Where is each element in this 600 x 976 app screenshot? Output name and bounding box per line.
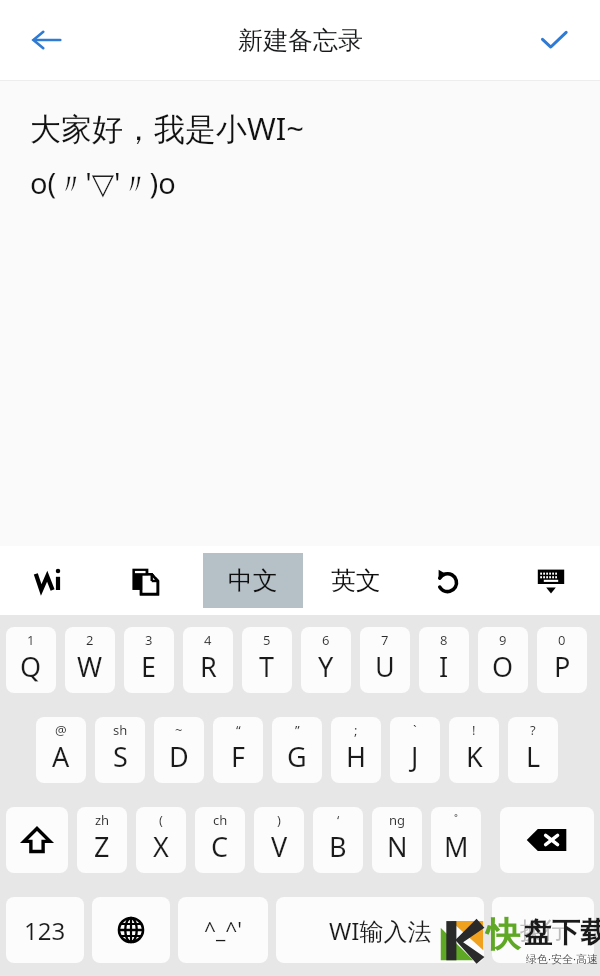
staticText: V — [271, 828, 288, 865]
staticText: 4 — [204, 631, 212, 649]
button[interactable]: ˋ — [390, 717, 440, 783]
button[interactable]: Shift — [6, 807, 68, 873]
staticText: N — [387, 828, 408, 865]
staticText: 快 — [486, 913, 520, 956]
button[interactable]: 4 — [183, 627, 233, 693]
staticText: G — [287, 738, 307, 775]
staticText: 2 — [86, 631, 94, 649]
staticText: WI输入法 — [329, 914, 432, 947]
staticText: ; — [354, 721, 358, 739]
staticText: J — [411, 738, 419, 775]
staticText: Z — [94, 828, 110, 865]
staticText: E — [141, 648, 157, 685]
button[interactable]: Enter — [492, 897, 594, 963]
button[interactable]: ‘ — [313, 807, 363, 873]
button[interactable]: 9 — [478, 627, 528, 693]
staticText: ch — [213, 811, 228, 829]
button[interactable]: WI input method — [22, 554, 76, 608]
button[interactable]: 6 — [301, 627, 351, 693]
staticText: C — [211, 828, 229, 865]
staticText: ‘ — [337, 811, 340, 829]
staticText: 绿色·安全·高速 — [526, 951, 598, 966]
button[interactable]: Save — [522, 8, 586, 72]
button[interactable]: 英文 — [310, 553, 402, 608]
staticText: 中文 — [228, 565, 278, 596]
button[interactable]: Undo — [420, 554, 474, 608]
staticText: 1 — [27, 631, 35, 649]
button[interactable]: Space — [276, 897, 484, 963]
staticText: sh — [113, 721, 128, 739]
staticText: 新建备忘录 — [238, 25, 363, 56]
staticText: A — [52, 738, 70, 775]
staticText: ? — [530, 721, 536, 739]
staticText: K — [466, 738, 483, 775]
staticText: O — [492, 648, 514, 685]
button[interactable]: ; — [331, 717, 381, 783]
button[interactable]: “ — [213, 717, 263, 783]
staticText: Q — [20, 648, 42, 685]
button[interactable]: 1 — [6, 627, 56, 693]
staticText: o(〃'▽'〃)o — [30, 163, 176, 203]
button[interactable]: Change language — [92, 897, 170, 963]
staticText: 123 — [24, 914, 66, 947]
staticText: D — [169, 738, 189, 775]
button[interactable]: ~ — [154, 717, 204, 783]
staticText: ˚ — [454, 811, 458, 829]
staticText: M — [444, 828, 469, 865]
staticText: ( — [159, 811, 163, 829]
button[interactable]: 3 — [124, 627, 174, 693]
staticText: “ — [236, 721, 241, 739]
button[interactable]: ” — [272, 717, 322, 783]
staticText: Y — [318, 648, 334, 685]
staticText: T — [259, 648, 275, 685]
staticText: ng — [389, 811, 406, 829]
staticText: L — [526, 738, 541, 775]
button[interactable]: 5 — [242, 627, 292, 693]
button[interactable]: ch — [195, 807, 245, 873]
staticText: @ — [55, 721, 67, 739]
button[interactable]: zh — [77, 807, 127, 873]
staticText: F — [231, 738, 246, 775]
button[interactable]: ˚ — [431, 807, 481, 873]
staticText: W — [77, 648, 103, 685]
staticText: 9 — [499, 631, 507, 649]
button[interactable]: Back — [14, 8, 78, 72]
button[interactable]: @ — [36, 717, 86, 783]
button[interactable]: ng — [372, 807, 422, 873]
button[interactable]: 8 — [419, 627, 469, 693]
staticText: ^_^' — [204, 916, 243, 945]
staticText: B — [329, 828, 347, 865]
button[interactable]: Copy — [118, 554, 172, 608]
staticText: ” — [295, 721, 300, 739]
staticText: ! — [472, 721, 476, 739]
button[interactable]: Hide keyboard — [522, 552, 580, 610]
staticText: 盘下载 — [524, 915, 600, 950]
staticText: ˋ — [413, 721, 417, 739]
staticText: 8 — [440, 631, 448, 649]
staticText: P — [554, 648, 571, 685]
staticText: 英文 — [331, 565, 381, 596]
staticText: 大家好，我是小WI~ — [30, 107, 305, 149]
staticText: X — [153, 828, 169, 865]
button[interactable]: 0 — [537, 627, 587, 693]
staticText: R — [200, 648, 217, 685]
button[interactable]: sh — [95, 717, 145, 783]
staticText: 3 — [145, 631, 153, 649]
button[interactable]: ) — [254, 807, 304, 873]
button[interactable]: ? — [508, 717, 558, 783]
staticText: 5 — [263, 631, 271, 649]
button[interactable]: ! — [449, 717, 499, 783]
button[interactable]: 2 — [65, 627, 115, 693]
button[interactable]: Numbers — [6, 897, 84, 963]
staticText: ~ — [175, 721, 183, 739]
button[interactable]: Backspace — [500, 807, 594, 873]
button[interactable]: ( — [136, 807, 186, 873]
staticText: 7 — [381, 631, 389, 649]
button[interactable]: 中文 — [203, 553, 303, 608]
staticText: zh — [95, 811, 110, 829]
button[interactable]: 7 — [360, 627, 410, 693]
staticText: H — [346, 738, 367, 775]
staticText: I — [439, 648, 449, 685]
button[interactable]: Emoticons — [178, 897, 268, 963]
staticText: S — [113, 738, 128, 775]
